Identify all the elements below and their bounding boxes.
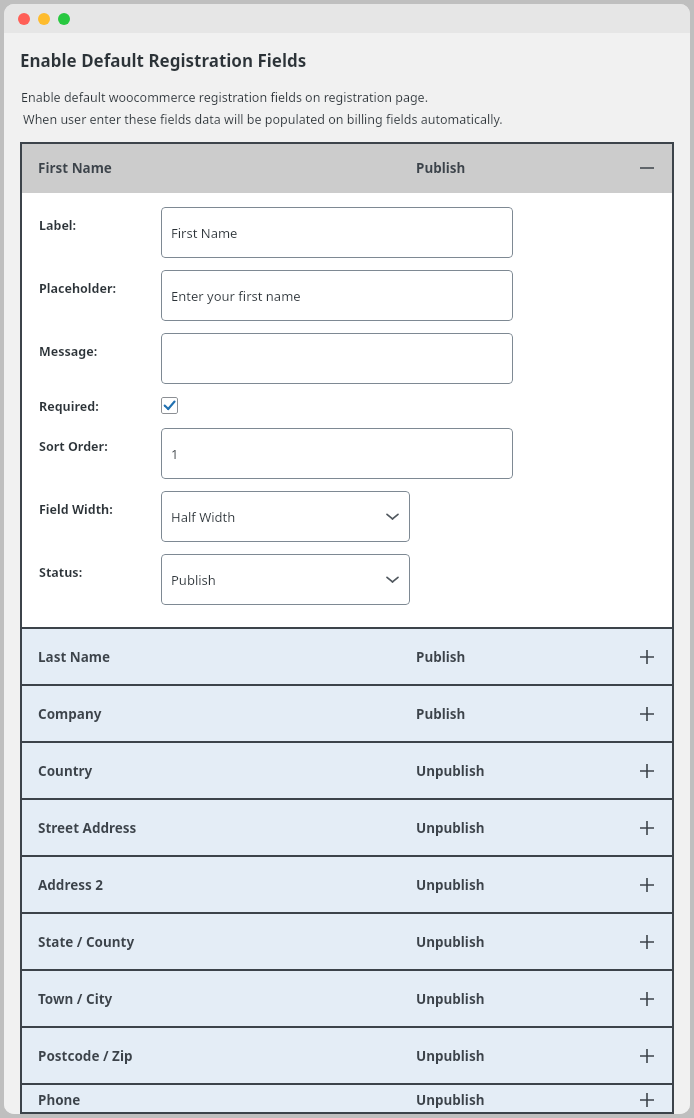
button[interactable]: Half Width xyxy=(161,491,410,542)
staticText: Postcode / Zip xyxy=(38,1047,133,1065)
button[interactable]: First Name xyxy=(161,207,513,258)
button[interactable]: Country xyxy=(20,743,674,798)
button[interactable]: Last Name xyxy=(20,629,674,684)
staticText: Company xyxy=(38,705,102,723)
button[interactable]: Street Address xyxy=(20,800,674,855)
staticText: First Name xyxy=(171,224,238,242)
staticText: Enable default woocommerce registration … xyxy=(21,89,429,106)
staticText: Sort Order: xyxy=(39,438,108,455)
staticText: First Name xyxy=(38,159,112,177)
staticText: Last Name xyxy=(38,648,111,666)
staticText: Phone xyxy=(38,1091,81,1109)
staticText: 1 xyxy=(171,445,179,463)
staticText: Country xyxy=(38,762,93,780)
staticText: Field Width: xyxy=(39,501,113,518)
staticText: Unpublish xyxy=(416,819,485,837)
staticText: Unpublish xyxy=(416,1091,485,1109)
staticText: Publish xyxy=(171,571,216,589)
staticText: When user enter these fields data will b… xyxy=(23,111,503,128)
button[interactable]: Postcode / Zip xyxy=(20,1028,674,1083)
staticText: State / County xyxy=(38,933,135,951)
button[interactable]: Publish xyxy=(161,554,410,605)
button[interactable]: 1 xyxy=(161,428,513,479)
staticText: Unpublish xyxy=(416,933,485,951)
button[interactable]: Phone xyxy=(20,1085,674,1114)
button[interactable]: Window control xyxy=(38,13,50,25)
button[interactable]: Company xyxy=(20,686,674,741)
staticText: Required: xyxy=(39,398,99,415)
button[interactable]: Address 2 xyxy=(20,857,674,912)
staticText: Label: xyxy=(39,217,77,234)
button[interactable] xyxy=(161,333,513,384)
staticText: Message: xyxy=(39,343,98,360)
staticText: Unpublish xyxy=(416,990,485,1008)
button[interactable]: Window control xyxy=(18,13,30,25)
staticText: Unpublish xyxy=(416,1047,485,1065)
button[interactable]: State / County xyxy=(20,914,674,969)
staticText: Publish xyxy=(416,159,466,177)
button[interactable]: Enter your first name xyxy=(161,270,513,321)
staticText: Publish xyxy=(416,648,466,666)
staticText: Unpublish xyxy=(416,876,485,894)
button[interactable]: First Name xyxy=(20,142,674,193)
staticText: Street Address xyxy=(38,819,137,837)
staticText: Half Width xyxy=(171,508,236,526)
button[interactable]: Town / City xyxy=(20,971,674,1026)
staticText: Enable Default Registration Fields xyxy=(20,49,307,72)
staticText: Status: xyxy=(39,564,83,581)
staticText: Publish xyxy=(416,705,466,723)
staticText: Unpublish xyxy=(416,762,485,780)
button[interactable]: Required xyxy=(161,397,178,414)
staticText: Address 2 xyxy=(38,876,104,894)
staticText: Town / City xyxy=(38,990,113,1008)
staticText: Placeholder: xyxy=(39,280,117,297)
button[interactable]: Window control xyxy=(58,13,70,25)
staticText: Enter your first name xyxy=(171,287,301,305)
